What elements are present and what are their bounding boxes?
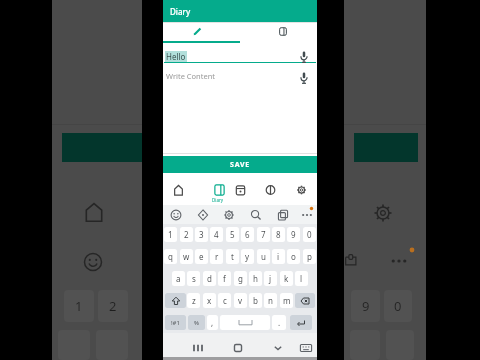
staticText: j: [269, 273, 272, 284]
button[interactable]: w: [180, 249, 193, 264]
staticText: a: [176, 273, 181, 284]
button[interactable]: 8: [272, 227, 285, 242]
staticText: b: [253, 295, 258, 306]
button[interactable]: h: [249, 271, 262, 286]
button[interactable]: Diary: [163, 0, 317, 22]
staticText: v: [238, 295, 243, 306]
button[interactable]: [301, 209, 313, 221]
button[interactable]: !#1: [165, 315, 186, 330]
button[interactable]: r: [210, 249, 223, 264]
staticText: Write Content: [166, 71, 216, 81]
button[interactable]: x: [203, 293, 216, 308]
staticText: 3: [199, 229, 204, 240]
button[interactable]: g: [234, 271, 247, 286]
button[interactable]: [277, 209, 289, 221]
button[interactable]: %: [188, 315, 205, 330]
staticText: g: [238, 273, 243, 284]
staticText: h: [253, 273, 258, 284]
button[interactable]: [230, 340, 246, 356]
button[interactable]: [255, 180, 286, 205]
staticText: 8: [276, 229, 281, 240]
staticText: Diary: [170, 6, 191, 17]
staticText: %: [194, 319, 199, 327]
button[interactable]: z: [187, 293, 200, 308]
staticText: 1: [75, 297, 83, 315]
staticText: 0: [394, 297, 402, 315]
button[interactable]: [240, 22, 317, 41]
staticText: 0: [307, 229, 312, 240]
button[interactable]: c: [218, 293, 231, 308]
button[interactable]: 6: [241, 227, 254, 242]
button[interactable]: 1: [164, 227, 177, 242]
button[interactable]: [297, 71, 311, 85]
staticText: 4: [214, 229, 219, 240]
staticText: i: [277, 251, 280, 262]
button[interactable]: 7: [257, 227, 270, 242]
button[interactable]: [170, 209, 182, 221]
button[interactable]: l: [295, 271, 308, 286]
button[interactable]: [250, 209, 262, 221]
button[interactable]: 9: [287, 227, 300, 242]
button[interactable]: [165, 293, 186, 308]
button[interactable]: q: [164, 249, 177, 264]
button[interactable]: [225, 180, 256, 205]
button[interactable]: 5: [226, 227, 239, 242]
button[interactable]: t: [226, 249, 239, 264]
button[interactable]: b: [249, 293, 262, 308]
button[interactable]: k: [280, 271, 293, 286]
staticText: f: [223, 273, 226, 284]
button[interactable]: .: [272, 315, 286, 330]
button[interactable]: j: [264, 271, 277, 286]
button[interactable]: [286, 180, 317, 205]
button[interactable]: f: [218, 271, 231, 286]
staticText: ,: [211, 317, 214, 328]
staticText: 1: [168, 229, 173, 240]
staticText: w: [183, 251, 190, 262]
button[interactable]: [295, 293, 315, 308]
button[interactable]: 3: [195, 227, 208, 242]
button[interactable]: m: [280, 293, 293, 308]
button[interactable]: [163, 22, 240, 41]
button[interactable]: [299, 341, 313, 355]
staticText: 2: [109, 297, 117, 315]
staticText: t: [231, 251, 234, 262]
button[interactable]: n: [264, 293, 277, 308]
button[interactable]: Write Content: [163, 66, 317, 86]
button[interactable]: s: [187, 271, 200, 286]
button[interactable]: e: [195, 249, 208, 264]
staticText: 5: [230, 229, 235, 240]
staticText: 9: [362, 297, 370, 315]
button[interactable]: 2: [180, 227, 193, 242]
staticText: z: [192, 295, 196, 306]
staticText: s: [192, 273, 196, 284]
button[interactable]: [220, 315, 270, 330]
button[interactable]: [270, 340, 286, 356]
staticText: Diary: [212, 197, 224, 203]
staticText: y: [245, 251, 250, 262]
staticText: 7: [261, 229, 266, 240]
button[interactable]: i: [272, 249, 285, 264]
staticText: l: [300, 273, 303, 284]
button[interactable]: [223, 209, 235, 221]
button[interactable]: d: [203, 271, 216, 286]
button[interactable]: y: [241, 249, 254, 264]
button[interactable]: 0: [303, 227, 316, 242]
button[interactable]: [297, 50, 311, 64]
button[interactable]: [190, 340, 206, 356]
button[interactable]: Diary: [194, 180, 225, 205]
staticText: r: [215, 251, 219, 262]
button[interactable]: p: [303, 249, 316, 264]
button[interactable]: SAVE: [163, 156, 317, 173]
button[interactable]: u: [257, 249, 270, 264]
staticText: n: [268, 295, 273, 306]
staticText: p: [307, 251, 312, 262]
button[interactable]: v: [234, 293, 247, 308]
staticText: .: [278, 317, 281, 328]
button[interactable]: [163, 180, 194, 205]
button[interactable]: o: [287, 249, 300, 264]
button[interactable]: a: [172, 271, 185, 286]
button[interactable]: ,: [207, 315, 218, 330]
button[interactable]: [290, 315, 312, 330]
button[interactable]: 4: [210, 227, 223, 242]
button[interactable]: [197, 209, 209, 221]
